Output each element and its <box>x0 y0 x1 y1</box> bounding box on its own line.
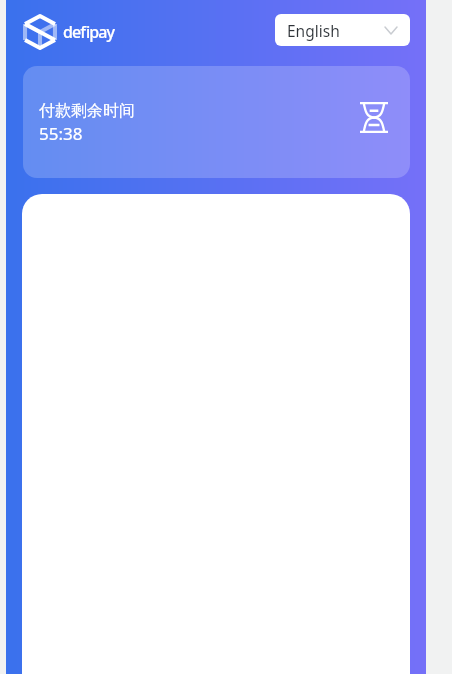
button[interactable]: Select language, English <box>275 14 410 46</box>
staticText: English <box>287 20 340 41</box>
button[interactable]: defipay home <box>23 14 114 50</box>
staticText: 55:38 <box>39 122 83 145</box>
button[interactable]: 付款剩余时间 <box>23 66 410 178</box>
staticText: defipay <box>63 21 114 43</box>
staticText: 付款剩余时间 <box>39 101 135 121</box>
